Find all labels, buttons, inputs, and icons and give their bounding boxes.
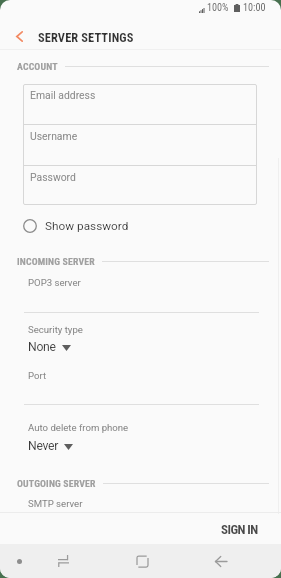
staticText: SERVER SETTINGS [38,30,134,45]
staticText: POP3 server [28,277,81,288]
staticText: INCOMING SERVER [17,256,95,267]
button[interactable]: Password [23,166,257,205]
button[interactable]: SMTP server [0,498,281,509]
button[interactable]: SIGN IN [208,514,271,545]
button[interactable]: POP3 server [0,277,281,288]
staticText: 100% [207,2,229,14]
staticText: Password [30,171,76,183]
staticText: OUTGOING SERVER [17,478,96,489]
staticText: Port [28,370,47,381]
button[interactable]: Show password [0,213,281,238]
button[interactable]: Email address [23,84,257,124]
staticText: None [28,340,56,354]
staticText: Auto delete from phone [28,422,129,433]
staticText: Never [28,439,58,453]
staticText: Show password [45,219,129,233]
button[interactable]: Back [209,549,233,573]
button[interactable]: Port [0,370,281,381]
button[interactable]: Navigate up [6,23,33,50]
staticText: Email address [30,89,96,101]
button[interactable]: Recent apps [51,549,75,573]
button[interactable]: Show navigation bar [7,549,31,573]
staticText: Security type [28,324,83,335]
button[interactable]: Never [0,439,281,453]
staticText: SIGN IN [221,522,258,537]
staticText: Username [30,130,78,142]
button[interactable]: Auto delete from phone [0,422,281,433]
button[interactable]: Username [23,125,257,165]
staticText: ACCOUNT [17,61,58,72]
staticText: 10:00 [243,2,266,14]
staticText: SMTP server [28,498,83,509]
button[interactable]: None [0,340,281,354]
button[interactable]: Home [130,549,154,573]
button[interactable]: Security type [0,324,281,335]
